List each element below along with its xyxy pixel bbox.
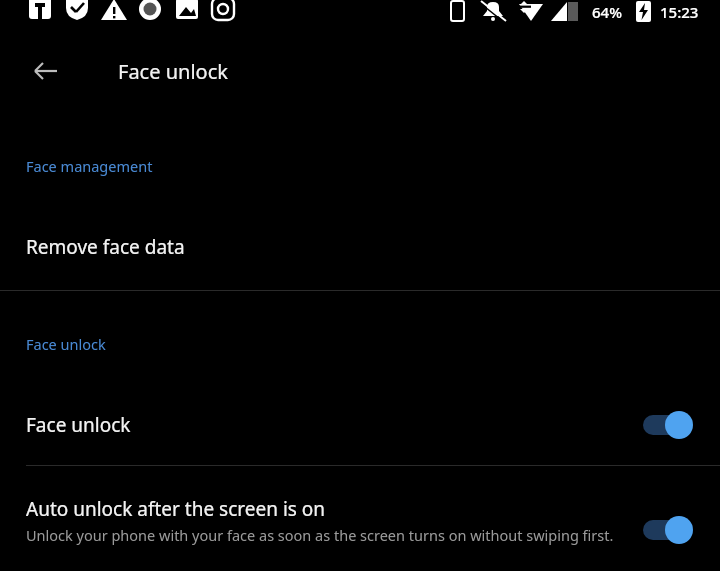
- button[interactable]: Toggle: [642, 515, 694, 545]
- button[interactable]: Auto unlock after the screen is on: [0, 466, 720, 571]
- button[interactable]: Face unlock: [0, 392, 720, 457]
- staticText: Face unlock: [26, 412, 642, 438]
- button[interactable]: Remove face data: [0, 213, 720, 281]
- staticText: Face unlock: [26, 334, 106, 354]
- staticText: Face unlock: [118, 58, 228, 85]
- staticText: Face management: [26, 156, 153, 176]
- staticText: 64%: [592, 2, 622, 22]
- staticText: Auto unlock after the screen is on: [26, 496, 326, 522]
- staticText: 15:23: [660, 2, 699, 22]
- button[interactable]: Back: [24, 49, 68, 93]
- button[interactable]: Toggle: [642, 410, 694, 440]
- staticText: Unlock your phone with your face as soon…: [26, 525, 614, 545]
- staticText: Remove face data: [26, 234, 185, 260]
